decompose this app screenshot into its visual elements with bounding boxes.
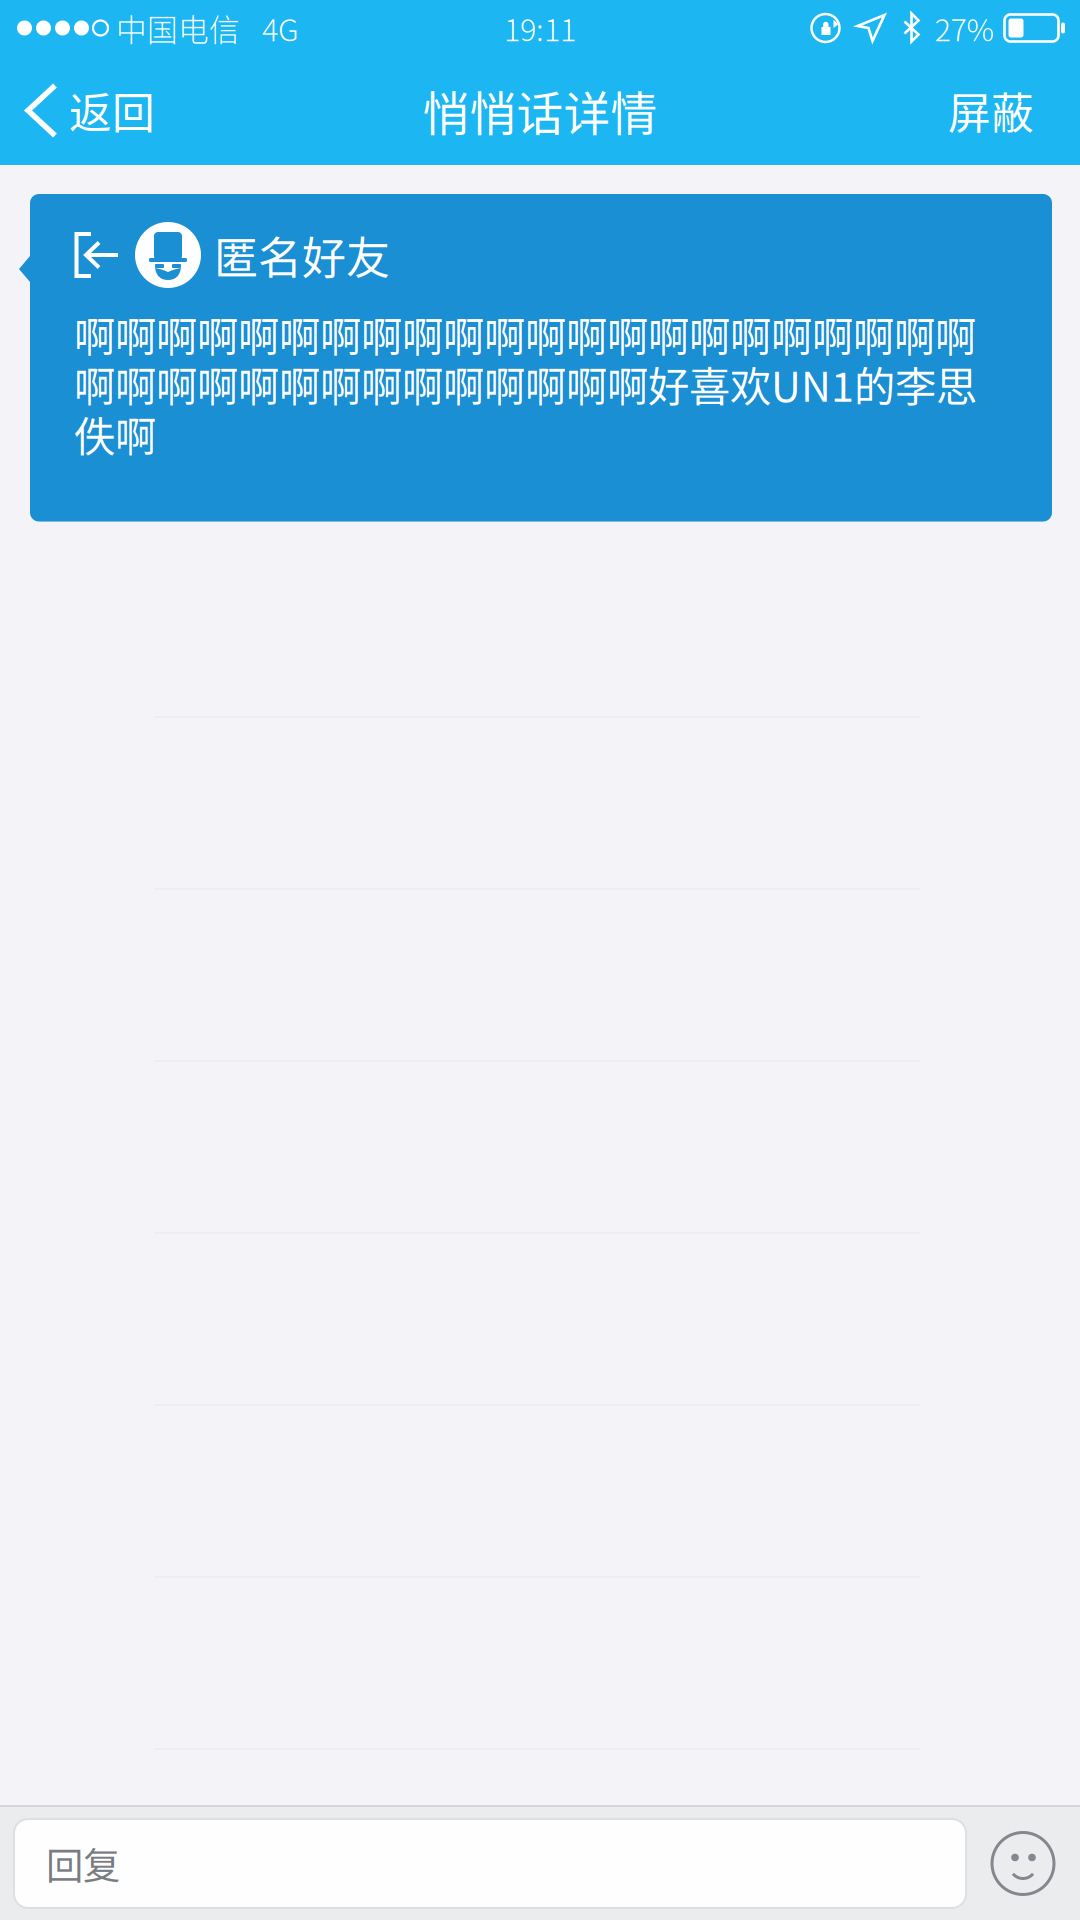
button[interactable]: Emoji — [966, 1807, 1080, 1920]
staticText: 啊啊啊啊啊啊啊啊啊啊啊啊啊啊啊啊啊啊啊啊啊啊啊啊啊啊啊啊啊啊啊啊啊啊啊啊好喜欢U… — [74, 304, 977, 464]
button[interactable]: 回复 — [14, 1819, 966, 1908]
staticText: 4G — [262, 6, 299, 50]
staticText: 27% — [934, 6, 994, 50]
staticText: 回复 — [46, 1836, 120, 1891]
staticText: 19:11 — [504, 6, 576, 50]
staticText: 屏蔽 — [948, 80, 1034, 141]
staticText: 匿名好友 — [214, 223, 390, 287]
button[interactable]: 返回 — [0, 56, 173, 165]
staticText: 返回 — [69, 80, 155, 141]
staticText: 中国电信 — [116, 6, 240, 50]
staticText: 悄悄话详情 — [422, 77, 657, 144]
button[interactable]: 屏蔽 — [918, 56, 1080, 165]
